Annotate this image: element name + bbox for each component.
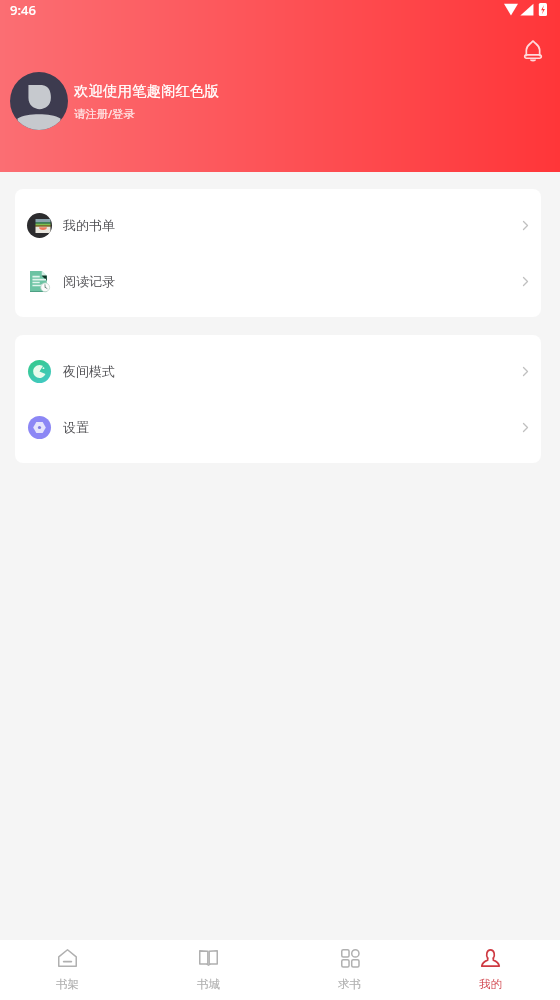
button[interactable]: 欢迎使用笔趣阁红色版 xyxy=(10,72,219,130)
staticText: 求书 xyxy=(338,977,361,991)
staticText: 设置 xyxy=(63,419,89,435)
staticText: 阅读记录 xyxy=(63,273,115,289)
staticText: 书架 xyxy=(56,977,79,991)
staticText: 书城 xyxy=(197,977,220,991)
staticText: 请注册/登录 xyxy=(74,106,135,121)
button[interactable]: 夜间模式 xyxy=(15,343,541,399)
button[interactable]: 书架 xyxy=(32,940,102,1000)
staticText: 夜间模式 xyxy=(63,363,115,379)
button[interactable]: 阅读记录 xyxy=(15,253,541,309)
button[interactable]: Notifications xyxy=(518,36,547,65)
staticText: 欢迎使用笔趣阁红色版 xyxy=(74,82,219,100)
button[interactable]: 我的 xyxy=(455,940,525,1000)
button[interactable]: 求书 xyxy=(314,940,384,1000)
staticText: 我的书单 xyxy=(63,217,115,233)
button[interactable]: 我的书单 xyxy=(15,197,541,253)
staticText: 9:46 xyxy=(10,1,36,19)
staticText: 我的 xyxy=(479,977,502,991)
button[interactable]: 书城 xyxy=(173,940,243,1000)
button[interactable]: 设置 xyxy=(15,399,541,455)
